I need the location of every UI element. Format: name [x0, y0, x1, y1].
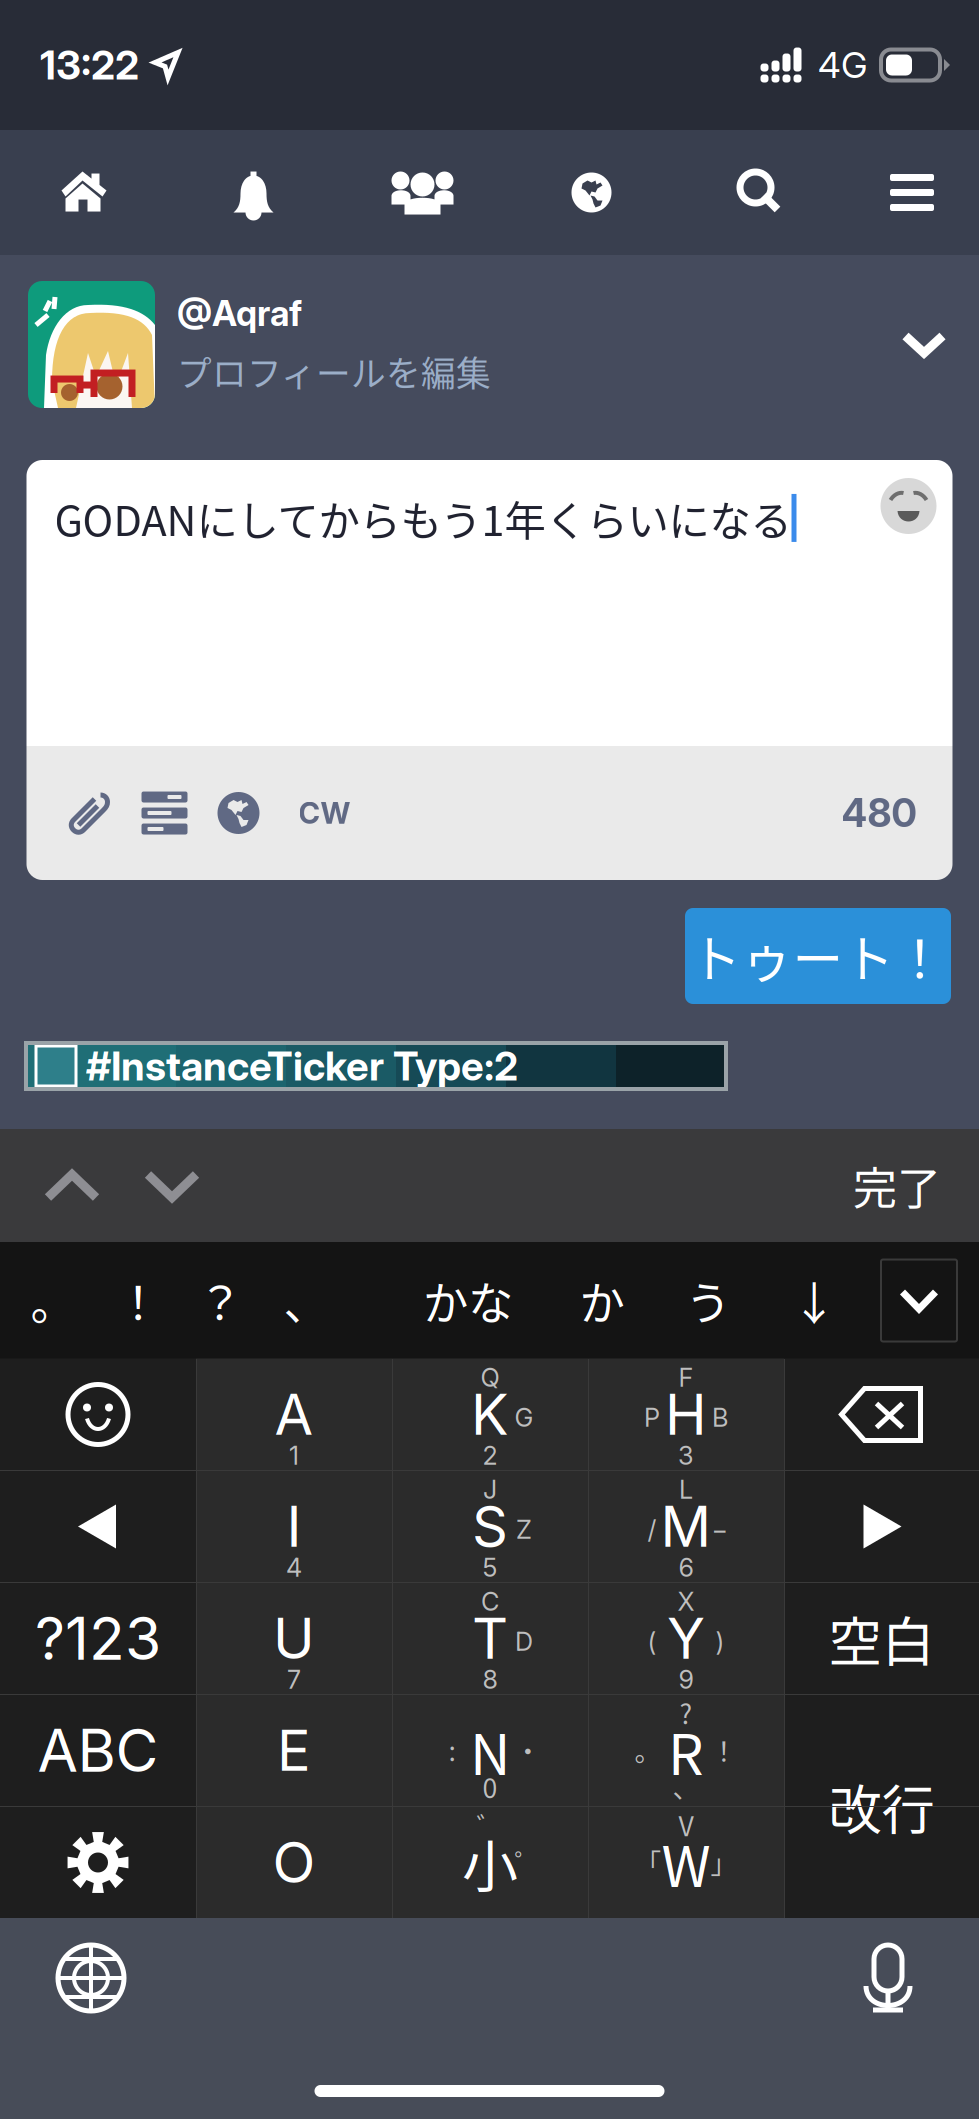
staticText: #InstanceTicker Type:2 [86, 1042, 518, 1090]
staticText: 小 [462, 1822, 518, 1903]
button[interactable]: W [588, 1806, 784, 1918]
staticText: 」 [710, 1842, 737, 1881]
staticText: ? [679, 1693, 692, 1732]
staticText: J [483, 1474, 497, 1505]
button[interactable]: う [680, 1255, 736, 1345]
staticText: 9 [678, 1664, 693, 1695]
button[interactable]: Search [676, 130, 845, 255]
staticText: ！ [710, 1730, 737, 1769]
staticText: 2 [482, 1440, 497, 1471]
button[interactable] [784, 1358, 979, 1470]
button[interactable]: ABC [0, 1694, 196, 1806]
staticText: / [647, 1514, 656, 1545]
button[interactable]: U [196, 1582, 392, 1694]
staticText: 1 [289, 1440, 299, 1471]
button[interactable]: Y [588, 1582, 784, 1694]
button[interactable]: I [196, 1470, 392, 1582]
staticText: 空白 [828, 1600, 934, 1677]
button[interactable]: ↓ [786, 1255, 842, 1345]
button[interactable]: ?123 [0, 1582, 196, 1694]
button[interactable]: Visibility [216, 773, 260, 853]
staticText: P [644, 1402, 660, 1433]
staticText: O [272, 1829, 315, 1896]
button[interactable]: R [588, 1694, 784, 1806]
staticText: N [470, 1710, 510, 1791]
button[interactable]: Local timeline [338, 130, 507, 255]
button[interactable]: S [392, 1470, 588, 1582]
button[interactable]: Notifications [169, 130, 338, 255]
staticText: V [678, 1805, 693, 1844]
staticText: 、 [672, 1767, 699, 1806]
button[interactable]: Add poll [138, 773, 190, 853]
button[interactable]: か [574, 1255, 630, 1345]
button[interactable]: Attach media [66, 773, 112, 853]
button[interactable]: Home [0, 130, 169, 255]
staticText: : [448, 1730, 455, 1769]
staticText: C [481, 1586, 499, 1617]
staticText: A [274, 1381, 313, 1448]
button[interactable]: O [196, 1806, 392, 1918]
button[interactable]: N [392, 1694, 588, 1806]
staticText: L [679, 1474, 693, 1505]
button[interactable]: 改行 [784, 1694, 979, 1918]
staticText: ( [647, 1626, 656, 1657]
staticText: 4G [818, 43, 867, 87]
button[interactable]: Federated timeline [507, 130, 676, 255]
button[interactable]: 、 [262, 1255, 350, 1345]
staticText: I [286, 1493, 301, 1560]
button[interactable]: 小 [392, 1806, 588, 1918]
button[interactable]: Previous field [22, 1130, 122, 1240]
button[interactable]: H [588, 1358, 784, 1470]
staticText: B [712, 1402, 728, 1433]
staticText: W [661, 1822, 710, 1903]
staticText: 完了 [853, 1154, 941, 1217]
button[interactable]: Menu [845, 130, 979, 255]
button[interactable]: Next keyboard [26, 1918, 156, 2038]
staticText: 5 [482, 1552, 497, 1583]
button[interactable]: M [588, 1470, 784, 1582]
staticText: M [660, 1493, 711, 1560]
button[interactable]: 空白 [784, 1582, 979, 1694]
button[interactable] [784, 1470, 979, 1582]
staticText: ！ [115, 1268, 160, 1333]
button[interactable]: E [196, 1694, 392, 1806]
button[interactable]: 完了 [853, 1130, 941, 1240]
staticText: かな [423, 1268, 513, 1333]
staticText: U [273, 1605, 315, 1672]
staticText: プロフィールを編集 [177, 346, 491, 397]
button[interactable] [0, 1806, 196, 1918]
staticText: ゛ [476, 1805, 503, 1844]
button[interactable]: トゥート！ [685, 908, 951, 1004]
staticText: か [579, 1268, 624, 1333]
button[interactable]: ！ [98, 1255, 178, 1345]
staticText: トゥート！ [690, 919, 945, 993]
staticText: T [472, 1605, 508, 1672]
staticText: 4 [286, 1552, 302, 1583]
staticText: 7 [287, 1664, 301, 1695]
button[interactable]: Hide keyboard [881, 1259, 957, 1341]
button[interactable] [0, 1470, 196, 1582]
staticText: ↓ [791, 1268, 836, 1333]
staticText: GODANにしてからもう1年くらいになる [54, 488, 791, 548]
staticText: − [711, 1514, 728, 1545]
button[interactable]: かな [412, 1255, 524, 1345]
staticText: 6 [678, 1552, 693, 1583]
staticText: K [471, 1381, 509, 1448]
button[interactable]: ？ [178, 1255, 262, 1345]
staticText: D [515, 1626, 533, 1657]
staticText: H [665, 1381, 707, 1448]
button[interactable]: A [196, 1358, 392, 1470]
staticText: 8 [482, 1664, 497, 1695]
button[interactable]: 。 [8, 1255, 98, 1345]
button[interactable]: Next field [122, 1130, 222, 1240]
button[interactable]: Dictate [823, 1918, 953, 2038]
staticText: Y [667, 1605, 705, 1672]
staticText: ？ [197, 1268, 242, 1333]
staticText: F [678, 1362, 693, 1393]
button[interactable]: @Aqraf [0, 255, 979, 434]
button[interactable]: T [392, 1582, 588, 1694]
button[interactable]: K [392, 1358, 588, 1470]
button[interactable] [0, 1358, 196, 1470]
button[interactable]: CW [284, 773, 364, 853]
staticText: ?123 [35, 1603, 161, 1674]
